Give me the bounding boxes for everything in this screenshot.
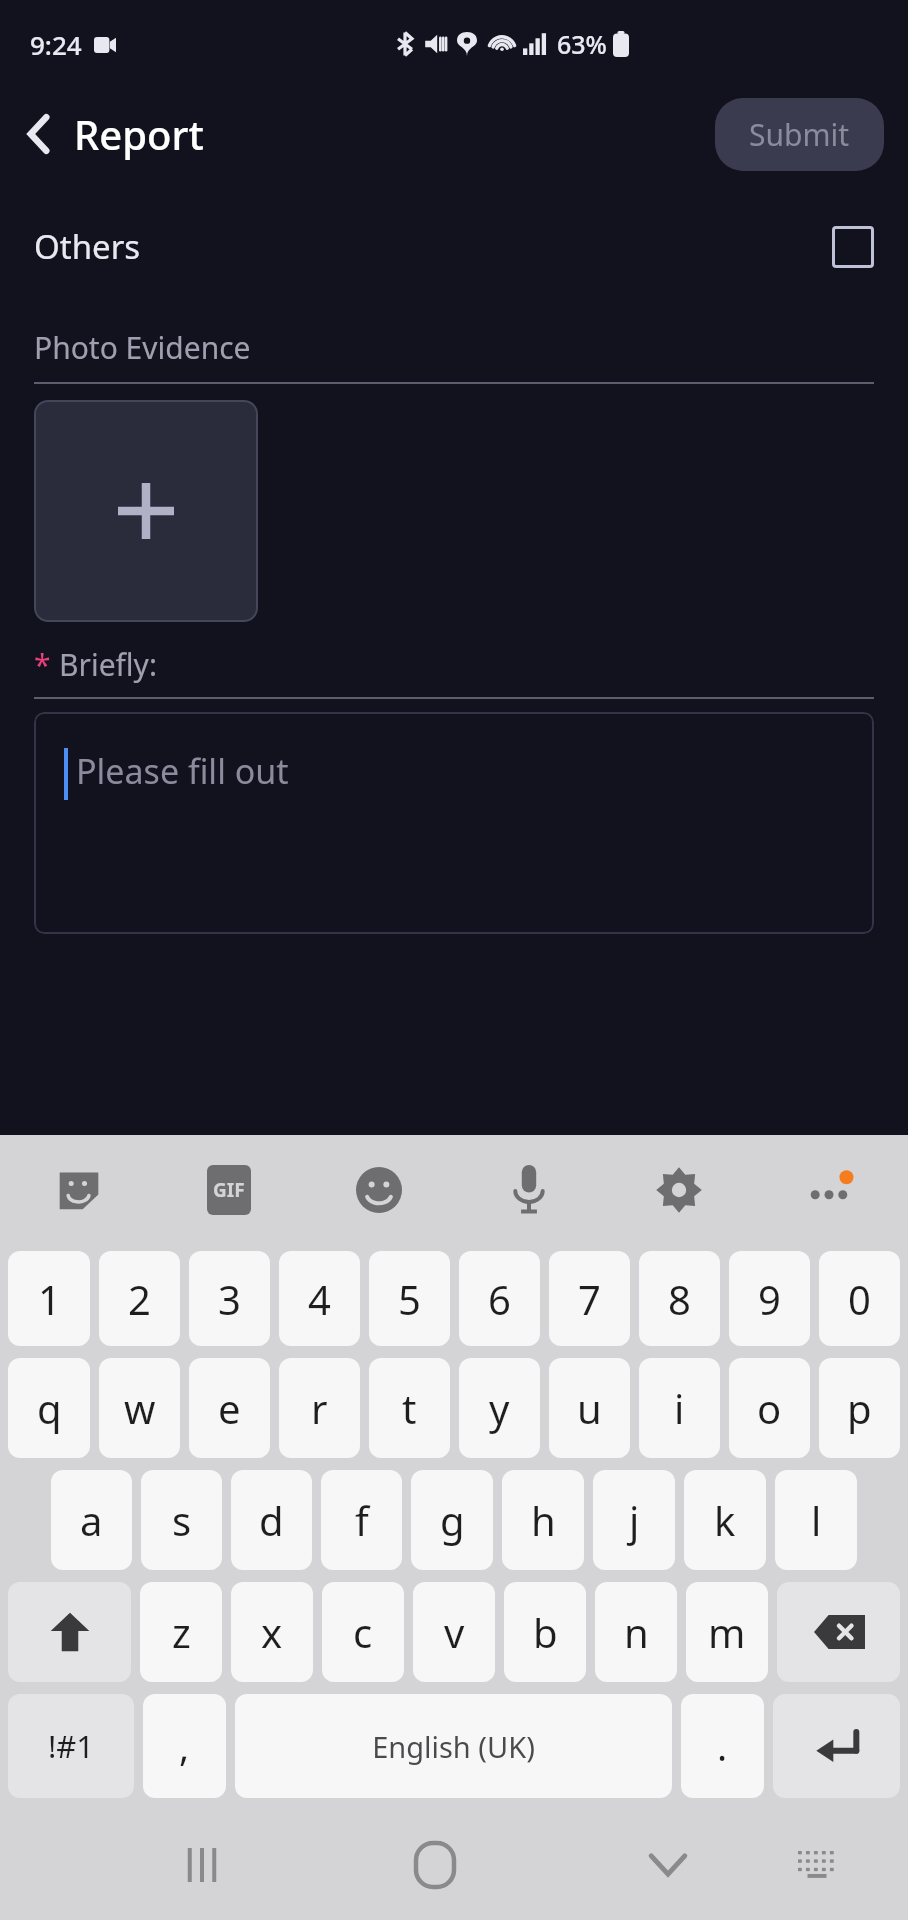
staticText: l xyxy=(811,1493,822,1547)
button[interactable]: b xyxy=(504,1582,586,1682)
button[interactable]: d xyxy=(231,1470,312,1570)
staticText: m xyxy=(708,1605,746,1659)
staticText: h xyxy=(531,1493,556,1547)
button[interactable]: g xyxy=(411,1470,493,1570)
staticText: Others xyxy=(34,224,141,269)
button[interactable]: !#1 xyxy=(8,1694,134,1798)
button[interactable]: 8 xyxy=(639,1251,720,1346)
staticText: Please fill out xyxy=(76,748,289,794)
button[interactable]: 3 xyxy=(189,1251,270,1346)
button[interactable]: h xyxy=(502,1470,584,1570)
button[interactable]: Stickers xyxy=(44,1155,114,1225)
button[interactable]: Shift xyxy=(8,1582,131,1682)
staticText: 0 xyxy=(848,1272,871,1326)
button[interactable]: Hide keyboard xyxy=(624,1821,712,1909)
staticText: y xyxy=(489,1381,510,1435)
button[interactable]: 9 xyxy=(729,1251,810,1346)
button[interactable]: t xyxy=(369,1358,450,1458)
staticText: 6 xyxy=(488,1272,511,1326)
staticText: d xyxy=(259,1493,284,1547)
staticText: Report xyxy=(74,107,204,161)
staticText: q xyxy=(37,1381,62,1435)
button[interactable]: Others xyxy=(0,214,908,279)
staticText: z xyxy=(172,1605,191,1659)
button[interactable]: Keyboard layout xyxy=(777,1825,857,1905)
button[interactable]: z xyxy=(140,1582,222,1682)
button[interactable]: o xyxy=(729,1358,810,1458)
staticText: j xyxy=(629,1493,640,1547)
button[interactable]: x xyxy=(231,1582,313,1682)
button[interactable]: j xyxy=(593,1470,675,1570)
staticText: 9:24 xyxy=(30,27,82,62)
button[interactable]: 2 xyxy=(99,1251,180,1346)
button[interactable]: Back xyxy=(0,107,218,161)
button[interactable]: f xyxy=(321,1470,402,1570)
staticText: s xyxy=(172,1493,192,1547)
button[interactable]: q xyxy=(8,1358,90,1458)
button[interactable]: w xyxy=(99,1358,180,1458)
staticText: 8 xyxy=(668,1272,691,1326)
button[interactable]: Home xyxy=(391,1821,479,1909)
button[interactable]: e xyxy=(189,1358,270,1458)
button[interactable]: Please fill out xyxy=(34,712,874,934)
button[interactable]: English (UK) xyxy=(235,1694,672,1798)
staticText: 4 xyxy=(308,1272,331,1326)
staticText: i xyxy=(674,1381,685,1435)
button[interactable]: n xyxy=(595,1582,677,1682)
staticText: b xyxy=(533,1605,558,1659)
staticText: . xyxy=(717,1720,728,1772)
button[interactable]: Enter xyxy=(773,1694,900,1798)
button[interactable]: Voice input xyxy=(494,1155,564,1225)
staticText: n xyxy=(624,1605,649,1659)
button[interactable]: More options xyxy=(794,1155,864,1225)
button[interactable]: 5 xyxy=(369,1251,450,1346)
button[interactable]: k xyxy=(684,1470,766,1570)
staticText: v xyxy=(444,1605,465,1659)
button[interactable]: c xyxy=(322,1582,404,1682)
button[interactable]: m xyxy=(686,1582,768,1682)
button[interactable]: Recents xyxy=(158,1821,246,1909)
button[interactable]: l xyxy=(775,1470,857,1570)
staticText: , xyxy=(179,1720,190,1772)
button[interactable]: y xyxy=(459,1358,540,1458)
staticText: w xyxy=(124,1381,156,1435)
button[interactable]: 0 xyxy=(819,1251,900,1346)
staticText: c xyxy=(353,1605,373,1659)
staticText: a xyxy=(80,1493,103,1547)
button[interactable]: GIF xyxy=(194,1155,264,1225)
staticText: 7 xyxy=(578,1272,601,1326)
button[interactable]: Submit xyxy=(715,98,884,171)
staticText: 1 xyxy=(38,1272,61,1326)
staticText: p xyxy=(847,1381,872,1435)
button[interactable]: a xyxy=(51,1470,132,1570)
staticText: Submit xyxy=(749,114,850,155)
button[interactable]: Add photo xyxy=(34,400,258,622)
button[interactable]: i xyxy=(639,1358,720,1458)
staticText: k xyxy=(714,1493,736,1547)
staticText: * xyxy=(34,644,51,685)
button[interactable]: Emoji xyxy=(344,1155,414,1225)
button[interactable]: , xyxy=(143,1694,226,1798)
button[interactable]: 1 xyxy=(8,1251,90,1346)
staticText: 3 xyxy=(218,1272,241,1326)
button[interactable]: 6 xyxy=(459,1251,540,1346)
staticText: 2 xyxy=(128,1272,151,1326)
staticText: GIF xyxy=(213,1177,245,1203)
button[interactable]: r xyxy=(279,1358,360,1458)
button[interactable]: p xyxy=(819,1358,900,1458)
other: Others checkbox xyxy=(832,226,874,268)
button[interactable]: Backspace xyxy=(777,1582,900,1682)
button[interactable]: s xyxy=(141,1470,222,1570)
button[interactable]: 7 xyxy=(549,1251,630,1346)
staticText: x xyxy=(261,1605,283,1659)
button[interactable]: . xyxy=(681,1694,764,1798)
staticText: o xyxy=(757,1381,782,1435)
staticText: !#1 xyxy=(48,1725,95,1767)
staticText: 9 xyxy=(758,1272,781,1326)
staticText: r xyxy=(311,1381,328,1435)
button[interactable]: Settings xyxy=(644,1155,714,1225)
other: Back xyxy=(26,113,52,155)
button[interactable]: 4 xyxy=(279,1251,360,1346)
button[interactable]: u xyxy=(549,1358,630,1458)
button[interactable]: v xyxy=(413,1582,495,1682)
